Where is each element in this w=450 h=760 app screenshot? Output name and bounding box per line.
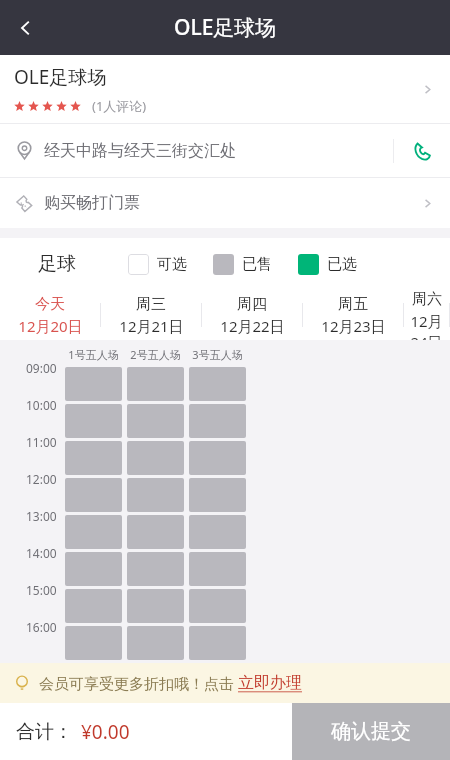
staticText: 10:00 [26,397,57,413]
staticText: 09:00 [26,360,57,376]
staticText: 今天 [35,295,65,314]
button[interactable]: 周五 [303,290,403,340]
staticText: 周四 [237,295,267,314]
staticText: 可选 [157,255,187,274]
staticText: 会员可享受更多折扣哦！点击 [39,673,238,693]
staticText: OLE足球场 [174,13,277,42]
staticText: 周三 [136,295,166,314]
button[interactable]: 经天中路与经天三街交汇处 [0,124,393,177]
staticText: 16:00 [26,619,57,635]
button[interactable]: 周四 [202,290,302,340]
button[interactable]: 购买畅打门票 [0,178,450,228]
staticText: 12月24日 [404,311,449,340]
staticText: 14:00 [26,545,57,561]
button[interactable]: 会员可享受更多折扣哦！点击 [0,663,450,703]
staticText: OLE足球场 [14,64,107,90]
staticText: 11:00 [26,434,57,450]
staticText: 经天中路与经天三街交汇处 [44,141,236,161]
staticText: 立即办理 [238,673,302,693]
staticText: (1人评论) [92,97,147,115]
staticText: 已售 [242,255,272,274]
button[interactable]: OLE足球场 [0,55,450,123]
staticText: 12:00 [26,471,57,487]
staticText: 周五 [338,295,368,314]
staticText: 13:00 [26,508,57,524]
staticText: 2号五人场 [130,347,181,362]
staticText: 15:00 [26,582,57,598]
staticText: 12月23日 [321,316,386,336]
staticText: 12月20日 [18,316,83,336]
staticText: 12月21日 [119,316,184,336]
button[interactable]: 确认提交 [292,703,450,760]
staticText: 已选 [327,255,357,274]
button[interactable]: 周六 [404,290,449,340]
staticText: 12月22日 [220,316,285,336]
button[interactable]: Call venue [394,124,450,177]
staticText: 足球 [38,252,76,276]
staticText: ¥0.00 [81,719,130,745]
button[interactable]: 周三 [101,290,201,340]
button[interactable]: 今天 [0,290,100,340]
staticText: 确认提交 [331,719,411,744]
staticText: 周六 [412,290,442,309]
staticText: 购买畅打门票 [44,193,421,213]
staticText: 合计： [16,720,73,744]
button[interactable]: Back [0,2,52,54]
staticText: 3号五人场 [192,347,243,362]
staticText: 1号五人场 [68,347,119,362]
